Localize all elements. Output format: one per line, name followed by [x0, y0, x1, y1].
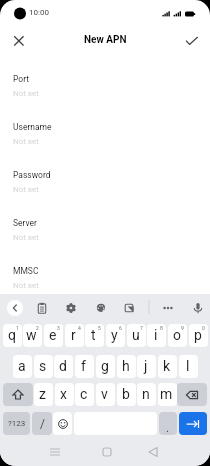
button[interactable]: u [127, 324, 146, 347]
button[interactable]: Tool [120, 299, 138, 317]
staticText: n [142, 386, 150, 402]
staticText: MMSC [13, 266, 39, 276]
button[interactable]: Server [0, 212, 210, 252]
staticText: 3 [57, 325, 60, 331]
staticText: o [173, 327, 181, 343]
staticText: 9 [181, 325, 184, 331]
staticText: Not set [13, 185, 39, 194]
button[interactable]: Tool [92, 299, 110, 317]
button[interactable]: g [96, 355, 115, 378]
button[interactable]: h [117, 355, 136, 378]
button[interactable]: c [75, 383, 94, 406]
staticText: Port [13, 74, 30, 84]
button[interactable]: o [168, 324, 187, 347]
staticText: e [49, 327, 57, 343]
staticText: 10:00 [29, 8, 49, 17]
button[interactable]: p [189, 324, 208, 347]
button[interactable]: s [34, 355, 53, 378]
staticText: 8 [160, 325, 163, 331]
button[interactable]: Back [7, 300, 23, 316]
button[interactable]: MMSC [0, 260, 210, 300]
button[interactable]: Close [6, 28, 32, 54]
staticText: Not set [13, 137, 39, 146]
staticText: s [39, 358, 47, 374]
staticText: l [186, 358, 190, 374]
button[interactable]: w [23, 324, 42, 347]
button[interactable]: Enter [179, 412, 207, 435]
button[interactable]: Recents [45, 442, 65, 462]
button[interactable]: j [137, 355, 156, 378]
button[interactable]: a [13, 355, 32, 378]
button[interactable]: Tool [189, 299, 207, 317]
button[interactable]: Key [177, 383, 207, 406]
staticText: Not set [13, 89, 39, 98]
staticText: u [132, 327, 140, 343]
staticText: d [59, 358, 67, 374]
staticText: . [166, 421, 170, 435]
button[interactable]: Key [53, 412, 72, 435]
button[interactable]: l [179, 355, 198, 378]
button[interactable]: r [65, 324, 84, 347]
staticText: New APN [84, 34, 127, 46]
button[interactable]: v [96, 383, 115, 406]
staticText: 2 [36, 325, 39, 331]
staticText: p [194, 327, 202, 343]
staticText: 7 [140, 325, 143, 331]
button[interactable]: ?123 [3, 412, 30, 435]
button[interactable]: f [75, 355, 94, 378]
staticText: Not set [13, 281, 39, 290]
button[interactable]: m [158, 383, 177, 406]
staticText: x [60, 386, 67, 402]
staticText: y [111, 327, 118, 343]
button[interactable]: q [3, 324, 22, 347]
button[interactable]: d [54, 355, 73, 378]
staticText: z [39, 386, 46, 402]
button[interactable]: Username [0, 116, 210, 156]
button[interactable]: Tool [159, 299, 177, 317]
button[interactable]: Home [97, 442, 117, 462]
staticText: ?123 [8, 419, 26, 428]
staticText: v [101, 386, 108, 402]
staticText: 4 [78, 325, 81, 331]
staticText: m [160, 386, 173, 402]
staticText: / [40, 417, 45, 431]
button[interactable]: Save [179, 28, 205, 54]
staticText: a [18, 358, 26, 374]
button[interactable]: Back [143, 442, 163, 462]
staticText: w [26, 327, 37, 343]
button[interactable]: b [117, 383, 136, 406]
button[interactable]: n [137, 383, 156, 406]
staticText: b [122, 386, 130, 402]
button[interactable]: Password [0, 164, 210, 204]
staticText: 6 [119, 325, 122, 331]
staticText: Not set [13, 233, 39, 242]
button[interactable]: Port [0, 68, 210, 108]
staticText: h [122, 358, 130, 374]
staticText: j [144, 358, 148, 374]
staticText: 1 [16, 325, 19, 331]
staticText: 5 [98, 325, 101, 331]
button[interactable]: i [147, 324, 166, 347]
staticText: g [101, 358, 109, 374]
button[interactable]: / [32, 412, 52, 435]
button[interactable]: . [159, 412, 177, 435]
staticText: Server [13, 218, 37, 228]
staticText: 0 [202, 325, 205, 331]
button[interactable]: e [44, 324, 63, 347]
button[interactable]: z [34, 383, 53, 406]
staticText: f [81, 358, 86, 374]
staticText: c [80, 386, 88, 402]
button[interactable]: Tool [33, 299, 51, 317]
button[interactable]: Key [3, 383, 33, 406]
staticText: t [91, 327, 96, 343]
button[interactable]: k [158, 355, 177, 378]
button[interactable]: Tool [62, 299, 80, 317]
button[interactable]: t [85, 324, 104, 347]
staticText: Username [13, 122, 52, 132]
staticText: i [154, 327, 158, 343]
button[interactable]: y [106, 324, 125, 347]
staticText: q [8, 327, 16, 343]
button[interactable]: x [55, 383, 74, 406]
staticText: r [71, 327, 76, 343]
